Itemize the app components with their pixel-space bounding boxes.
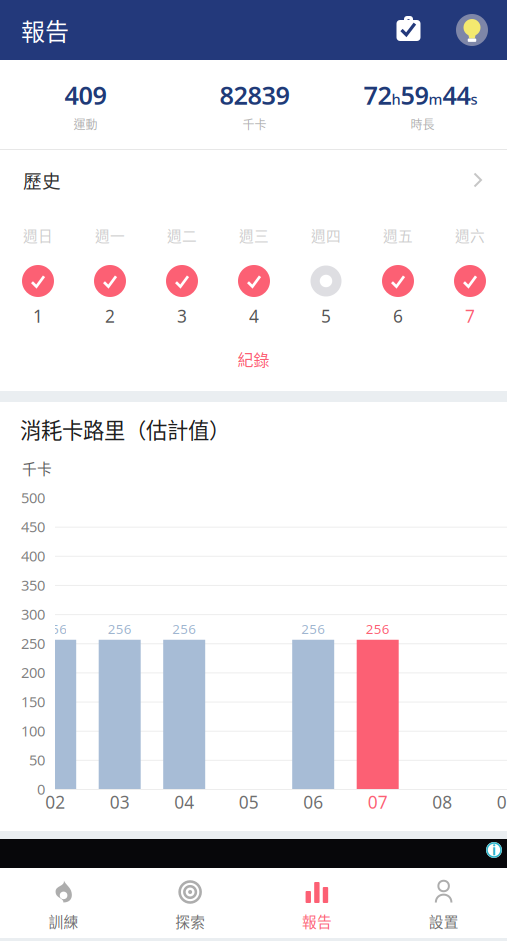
staticText: 7 [465, 304, 475, 327]
staticText: 150 [21, 692, 45, 711]
staticText: 300 [21, 604, 45, 624]
staticText: 400 [21, 546, 45, 566]
staticText: m [428, 89, 442, 109]
button[interactable]: 週六 [434, 218, 506, 328]
staticText: 報告 [302, 910, 332, 932]
staticText: 設置 [429, 910, 459, 932]
button[interactable]: 訓練 [0, 868, 127, 938]
button[interactable]: Workout log [382, 0, 434, 58]
button[interactable]: 歷史 [0, 150, 507, 207]
staticText: 09 [497, 790, 507, 813]
staticText: 週日 [23, 224, 53, 246]
staticText: 44 [442, 78, 470, 112]
staticText: 紀錄 [237, 347, 269, 371]
staticText: 72 [363, 78, 391, 112]
staticText: 週五 [383, 224, 413, 246]
staticText: 250 [21, 633, 45, 653]
staticText: 50 [29, 750, 45, 770]
button[interactable]: 週二 [146, 218, 218, 328]
staticText: 週四 [311, 224, 341, 246]
button[interactable]: 探索 [127, 868, 254, 938]
staticText: 256 [43, 620, 67, 638]
staticText: 週一 [95, 224, 125, 246]
button[interactable]: 週一 [74, 218, 146, 328]
staticText: 256 [172, 620, 196, 638]
staticText: 02 [45, 790, 65, 813]
staticText: 6 [393, 304, 403, 327]
staticText: 4 [249, 304, 259, 327]
staticText: 05 [239, 790, 259, 813]
staticText: 訓練 [48, 910, 78, 932]
button[interactable]: 週三 [218, 218, 290, 328]
staticText: h [391, 89, 400, 109]
staticText: 03 [110, 790, 130, 813]
staticText: 500 [21, 488, 45, 507]
staticText: 運動 [73, 115, 97, 133]
button[interactable]: Advertisement [0, 839, 507, 868]
staticText: s [470, 89, 477, 109]
staticText: 週六 [455, 224, 485, 246]
staticText: 04 [174, 790, 194, 813]
staticText: 2 [105, 304, 115, 327]
button[interactable]: 週五 [362, 218, 434, 328]
staticText: 1 [33, 304, 43, 327]
staticText: 時長 [410, 115, 434, 133]
staticText: 256 [301, 620, 325, 638]
staticText: 100 [21, 721, 45, 740]
staticText: 200 [21, 663, 45, 682]
button[interactable]: Tips [446, 0, 498, 60]
staticText: 5 [321, 304, 331, 327]
button[interactable]: 報告 [253, 868, 380, 938]
staticText: 07 [368, 790, 388, 813]
staticText: 歷史 [23, 166, 61, 193]
staticText: 256 [108, 620, 132, 638]
staticText: i [492, 841, 496, 859]
staticText: 消耗卡路里（估計值） [20, 414, 230, 444]
staticText: 08 [432, 790, 452, 813]
staticText: 256 [366, 620, 390, 638]
staticText: 82839 [219, 78, 289, 112]
button[interactable]: 紀錄 [0, 338, 507, 380]
staticText: 3 [177, 304, 187, 327]
staticText: 450 [21, 517, 45, 536]
staticText: 59 [400, 78, 428, 112]
staticText: 週二 [167, 224, 197, 246]
staticText: 409 [64, 78, 106, 112]
staticText: 千卡 [242, 115, 266, 133]
button[interactable]: 設置 [380, 868, 507, 938]
staticText: 350 [21, 575, 45, 595]
staticText: 0 [37, 779, 45, 799]
staticText: 千卡 [22, 457, 52, 479]
button[interactable]: 週日 [2, 218, 74, 328]
staticText: 06 [303, 790, 323, 813]
staticText: 週三 [239, 224, 269, 246]
button[interactable]: 週四 [290, 218, 362, 328]
staticText: 探索 [175, 910, 205, 932]
staticText: 報告 [21, 13, 69, 47]
